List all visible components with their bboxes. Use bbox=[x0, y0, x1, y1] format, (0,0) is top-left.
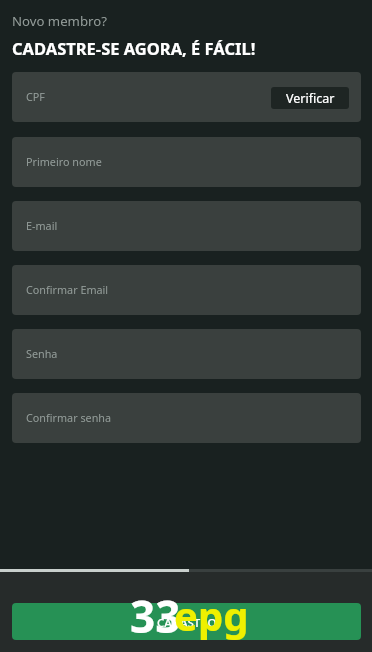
button[interactable]: Primeiro nome bbox=[12, 137, 361, 187]
staticText: Confirmar senha bbox=[26, 410, 112, 425]
button[interactable]: Senha bbox=[12, 329, 361, 379]
staticText: Verificar bbox=[286, 90, 335, 107]
staticText: Novo membro? bbox=[12, 12, 107, 30]
button[interactable]: E-mail bbox=[12, 201, 361, 251]
staticText: E-mail bbox=[26, 218, 58, 233]
button[interactable]: Confirmar Email bbox=[12, 265, 361, 315]
staticText: 33 bbox=[130, 586, 181, 646]
button[interactable]: Confirmar senha bbox=[12, 393, 361, 443]
staticText: Primeiro nome bbox=[26, 154, 102, 169]
staticText: CPF bbox=[26, 89, 45, 104]
button[interactable]: CPF bbox=[12, 72, 361, 122]
staticText: CADASTRE-SE AGORA, É FÁCIL! bbox=[12, 37, 256, 59]
other: Progresso do cadastro bbox=[0, 569, 372, 572]
staticText: epg bbox=[174, 588, 249, 642]
staticText: Confirmar Email bbox=[26, 282, 109, 297]
staticText: Senha bbox=[26, 346, 58, 361]
staticText: CADASTRO bbox=[157, 615, 217, 631]
button[interactable]: CADASTRO bbox=[12, 603, 361, 640]
button[interactable]: Verificar bbox=[271, 87, 349, 109]
